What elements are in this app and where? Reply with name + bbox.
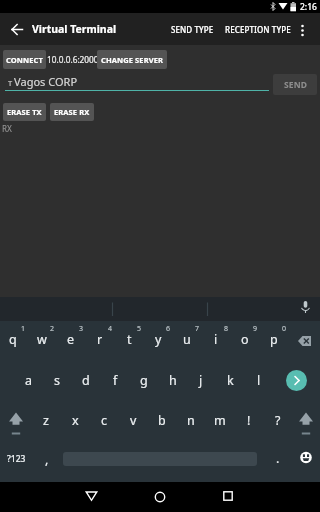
button[interactable]: a	[16, 367, 42, 393]
staticText: SEND	[284, 79, 307, 91]
button[interactable]	[286, 370, 307, 391]
button[interactable]: k	[217, 367, 243, 393]
staticText: 0	[282, 324, 287, 333]
button[interactable]: p	[261, 326, 287, 352]
staticText: 7	[195, 324, 200, 333]
button[interactable]	[214, 484, 242, 509]
staticText: c	[101, 412, 108, 429]
button[interactable]	[0, 321, 320, 482]
button[interactable]: l	[246, 367, 272, 393]
button[interactable]: i	[203, 326, 229, 352]
button[interactable]: w	[29, 326, 55, 352]
button[interactable]	[2, 407, 30, 439]
button[interactable]	[146, 484, 174, 509]
button[interactable]	[294, 17, 311, 41]
button[interactable]: z	[33, 407, 59, 433]
staticText: 10.0.0.6:2000	[47, 54, 99, 65]
button[interactable]: n	[178, 407, 204, 433]
button[interactable]	[289, 329, 320, 353]
staticText: ,	[45, 451, 49, 468]
staticText: k	[227, 372, 234, 389]
button[interactable]: f	[102, 367, 128, 393]
button[interactable]: ,	[34, 446, 60, 472]
button[interactable]: y	[145, 326, 171, 352]
staticText: j	[199, 372, 203, 389]
button[interactable]: t	[116, 326, 142, 352]
staticText: u	[183, 331, 191, 348]
staticText: ERASE TX	[7, 107, 42, 117]
button[interactable]: b	[149, 407, 175, 433]
button[interactable]: CHANGE SERVER	[97, 50, 167, 69]
button[interactable]: h	[160, 367, 186, 393]
staticText: 2	[50, 324, 55, 333]
staticText: s	[54, 372, 60, 389]
staticText: o	[241, 331, 249, 348]
button[interactable]: r	[87, 326, 113, 352]
staticText: !	[247, 412, 251, 429]
button[interactable]: CONNECT	[3, 50, 46, 69]
button[interactable]: RECEPTION TYPE	[221, 13, 295, 45]
staticText: p	[270, 331, 278, 348]
button[interactable]: o	[232, 326, 258, 352]
button[interactable]	[294, 445, 319, 470]
staticText: ERASE RX	[54, 107, 90, 117]
staticText: RX	[2, 123, 12, 133]
staticText: a	[25, 372, 33, 389]
staticText: CONNECT	[6, 55, 43, 65]
staticText: .	[276, 450, 280, 467]
staticText: v	[130, 412, 137, 429]
button[interactable]	[292, 407, 320, 439]
staticText: ?123	[7, 453, 26, 465]
button[interactable]: c	[91, 407, 117, 433]
staticText: d	[82, 372, 90, 389]
button[interactable]: ERASE RX	[50, 103, 94, 121]
staticText: CHANGE SERVER	[101, 55, 163, 65]
staticText: r	[97, 331, 103, 348]
staticText: q	[9, 331, 17, 348]
staticText: x	[72, 412, 79, 429]
button[interactable]: j	[188, 367, 214, 393]
staticText: m	[214, 412, 226, 429]
staticText: z	[43, 412, 49, 429]
button[interactable]: ERASE TX	[3, 103, 46, 121]
button[interactable]: T Vagos CORP	[5, 74, 269, 89]
staticText: RECEPTION TYPE	[225, 24, 291, 35]
staticText: f	[113, 372, 118, 389]
staticText: Virtual Terminal	[32, 22, 117, 36]
button[interactable]: SEND TYPE	[164, 13, 220, 45]
staticText: T Vagos CORP	[8, 74, 78, 89]
button[interactable]: !	[236, 407, 262, 433]
button[interactable]: u	[174, 326, 200, 352]
staticText: 5	[137, 324, 142, 333]
button[interactable]: ?	[265, 407, 291, 433]
button[interactable]: g	[131, 367, 157, 393]
staticText: 1	[21, 324, 26, 333]
button[interactable]: d	[73, 367, 99, 393]
staticText: g	[140, 372, 148, 389]
button[interactable]: s	[44, 367, 70, 393]
button[interactable]: v	[120, 407, 146, 433]
button[interactable]	[78, 484, 105, 509]
staticText: 8	[224, 324, 229, 333]
staticText: y	[155, 331, 162, 348]
staticText: 2:16	[300, 1, 317, 13]
staticText: l	[257, 372, 261, 389]
button[interactable]: q	[0, 326, 26, 352]
staticText: i	[214, 331, 218, 348]
staticText: SEND TYPE	[171, 24, 214, 35]
staticText: n	[187, 412, 195, 429]
button[interactable]: e	[58, 326, 84, 352]
staticText: b	[158, 412, 166, 429]
staticText: ?	[275, 412, 281, 429]
staticText: h	[169, 372, 177, 389]
button[interactable]: SEND	[273, 74, 317, 95]
button[interactable]: .	[265, 445, 291, 471]
staticText: 9	[253, 324, 258, 333]
button[interactable]: x	[62, 407, 88, 433]
staticText: e	[67, 331, 75, 348]
button[interactable]: m	[207, 407, 233, 433]
staticText: w	[37, 331, 47, 348]
staticText: t	[127, 331, 132, 348]
button[interactable]	[5, 17, 29, 41]
